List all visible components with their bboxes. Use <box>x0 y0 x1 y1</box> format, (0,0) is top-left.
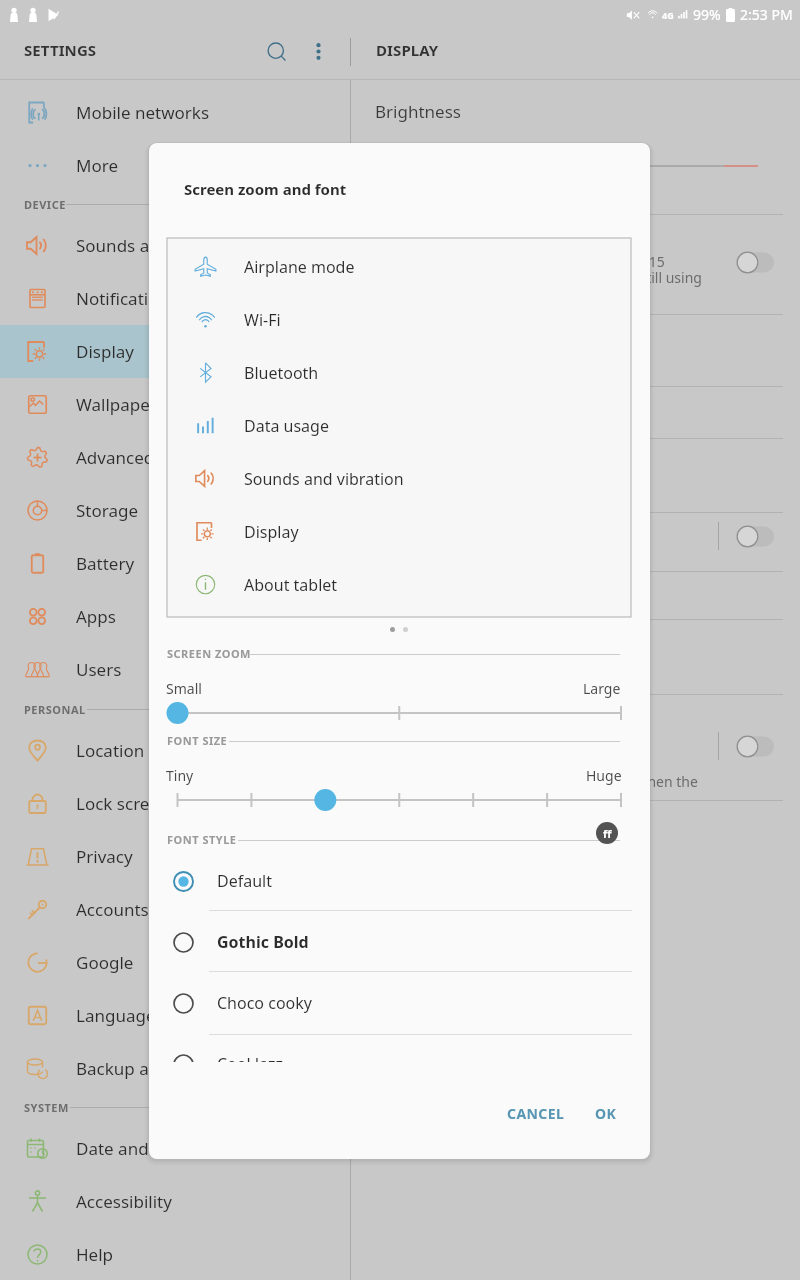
button[interactable]: Language and input <box>0 989 350 1042</box>
button[interactable]: Display <box>0 325 350 378</box>
staticText: CANCEL <box>507 1104 565 1123</box>
button[interactable]: DISPLAY <box>376 40 439 60</box>
button[interactable]: Toggle <box>736 735 774 758</box>
staticText: PERSONAL <box>24 702 86 717</box>
button[interactable]: More <box>0 139 350 192</box>
staticText: Small <box>166 679 202 698</box>
staticText: Automatically adjust the brightness afte… <box>377 252 665 271</box>
button[interactable]: Date and time <box>0 1122 350 1175</box>
staticText: Location <box>76 739 145 762</box>
staticText: Bluetooth <box>244 362 319 384</box>
button[interactable]: Slider <box>149 699 650 727</box>
staticText: SYSTEM <box>24 1100 69 1115</box>
staticText: Help <box>76 1243 114 1266</box>
button[interactable]: Location <box>0 724 350 777</box>
staticText: FONT STYLE <box>167 832 237 847</box>
button[interactable]: Display <box>168 505 630 558</box>
button[interactable]: Data usage <box>168 399 630 452</box>
button[interactable]: Gothic Bold <box>168 916 630 968</box>
staticText: Notifications <box>76 287 178 310</box>
button[interactable]: Sounds and vibration <box>0 219 350 272</box>
staticText: Accessibility <box>76 1190 172 1213</box>
staticText: Large <box>583 679 621 698</box>
staticText: Cool Jazz <box>217 1053 284 1062</box>
staticText: Accounts <box>76 898 149 921</box>
staticText: SETTINGS <box>24 40 97 60</box>
button[interactable]: Bluetooth <box>168 346 630 399</box>
button[interactable]: CANCEL <box>493 1093 579 1134</box>
staticText: Airplane mode <box>244 256 355 278</box>
staticText: Brightness <box>375 100 461 123</box>
staticText: Sounds and vibration <box>244 468 404 490</box>
button[interactable]: Accounts <box>0 883 350 936</box>
button[interactable]: Google <box>0 936 350 989</box>
staticText: Screen zoom and font <box>184 179 347 199</box>
staticText: Google <box>76 951 134 974</box>
staticText: Backup and reset <box>76 1057 215 1080</box>
button[interactable]: Wallpapers and themes <box>0 378 350 431</box>
staticText: Set the screen to turn off automatically… <box>377 772 698 791</box>
staticText: Privacy <box>76 845 133 868</box>
button[interactable]: Airplane mode <box>168 240 630 293</box>
button[interactable]: Sounds and vibration <box>168 452 630 505</box>
button[interactable]: Choco cooky <box>168 977 630 1029</box>
button[interactable]: Slider <box>149 786 650 814</box>
staticText: Huge <box>586 766 622 785</box>
button[interactable]: Users <box>0 643 350 696</box>
staticText: More <box>76 154 118 177</box>
button[interactable]: Accessibility <box>0 1175 350 1228</box>
button[interactable]: Storage <box>0 484 350 537</box>
staticText: FONT SIZE <box>167 733 228 748</box>
button[interactable]: Cool Jazz <box>168 1038 630 1062</box>
button[interactable]: More options <box>308 41 329 62</box>
button[interactable]: Apps <box>0 590 350 643</box>
staticText: 99% <box>693 5 721 24</box>
button[interactable]: Search <box>268 41 289 62</box>
button[interactable]: Backup and reset <box>0 1042 350 1095</box>
staticText: Wallpapers and themes <box>76 393 265 416</box>
staticText: 4G <box>662 9 674 21</box>
button[interactable]: Help <box>0 1228 350 1280</box>
staticText: Users <box>76 658 122 681</box>
button[interactable]: About tablet <box>168 558 630 611</box>
staticText: Display <box>76 340 134 363</box>
staticText: Apps <box>76 605 116 628</box>
button[interactable]: Lock screen and security <box>0 777 350 830</box>
button[interactable]: Default <box>168 855 630 907</box>
button[interactable]: OK <box>581 1093 631 1134</box>
staticText: Mobile networks <box>76 101 210 124</box>
staticText: OK <box>595 1104 617 1123</box>
staticText: Wi-Fi <box>244 309 281 331</box>
staticText: Battery <box>76 552 135 575</box>
button[interactable]: Mobile networks <box>0 86 350 139</box>
staticText: Language and input <box>76 1004 237 1027</box>
button[interactable]: Toggle <box>736 251 774 274</box>
staticText: Data usage <box>244 415 329 437</box>
staticText: Choco cooky <box>217 992 312 1014</box>
button[interactable]: Notifications <box>0 272 350 325</box>
staticText: ff <box>603 826 612 841</box>
staticText: SCREEN ZOOM <box>167 646 251 661</box>
staticText: Gothic Bold <box>217 931 309 953</box>
staticText: Date and time <box>76 1137 190 1160</box>
staticText: 2:53 PM <box>740 5 793 24</box>
staticText: Display <box>244 521 299 543</box>
staticText: Advanced features <box>76 446 225 469</box>
button[interactable]: Advanced features <box>0 431 350 484</box>
staticText: DEVICE <box>24 197 66 212</box>
button[interactable]: Privacy <box>0 830 350 883</box>
button[interactable]: Battery <box>0 537 350 590</box>
button[interactable]: SETTINGS <box>24 40 97 60</box>
staticText: DISPLAY <box>376 40 439 60</box>
staticText: Storage <box>76 499 139 522</box>
staticText: About tablet <box>244 574 338 596</box>
staticText: Tiny <box>166 766 194 785</box>
staticText: Default <box>217 870 272 892</box>
staticText: Lock screen and security <box>76 792 272 815</box>
button[interactable]: Toggle <box>736 525 774 548</box>
staticText: Sounds and vibration <box>76 234 246 257</box>
button[interactable]: Wi-Fi <box>168 293 630 346</box>
staticText: seconds of inactivity when the screen is… <box>377 268 702 287</box>
